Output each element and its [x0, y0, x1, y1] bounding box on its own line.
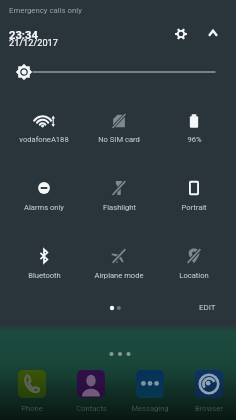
button[interactable]: Portrait — [157, 168, 231, 208]
button[interactable]: EDIT — [192, 300, 222, 315]
staticText: Bluetooth — [28, 271, 61, 280]
button[interactable]: Browser — [180, 370, 236, 414]
button[interactable]: Flashlight — [82, 168, 156, 208]
button[interactable]: Airplane mode — [82, 236, 156, 276]
staticText: Messaging — [131, 404, 169, 413]
staticText: 96% — [187, 135, 202, 144]
button[interactable]: Wi-Fi — [7, 101, 81, 141]
button[interactable]: Location — [157, 236, 231, 276]
staticText: Alarms only — [24, 203, 64, 212]
button[interactable]: Contacts — [62, 370, 120, 414]
button[interactable]: Bluetooth — [7, 236, 81, 276]
staticText: Portrait — [181, 203, 207, 212]
staticText: Flashlight — [103, 203, 136, 212]
button[interactable]: Phone — [3, 370, 61, 414]
button[interactable]: Alarms only — [7, 168, 81, 208]
staticText: Airplane mode — [94, 271, 144, 280]
button[interactable]: No SIM card — [82, 101, 156, 141]
staticText: Contacts — [76, 404, 107, 413]
button[interactable]: Battery — [157, 101, 231, 141]
staticText: 21/12/2017 — [9, 37, 58, 48]
button[interactable]: Messaging — [121, 370, 179, 414]
staticText: 23:34 — [9, 29, 38, 42]
staticText: Emergency calls only — [9, 6, 82, 15]
button[interactable]: Collapse — [199, 19, 227, 47]
staticText: No SIM card — [98, 135, 140, 144]
staticText: EDIT — [199, 303, 216, 312]
staticText: Phone — [21, 404, 43, 413]
button[interactable]: Brightness — [10, 58, 38, 86]
staticText: Browser — [195, 404, 223, 413]
staticText: Location — [179, 271, 209, 280]
button[interactable]: Settings — [167, 20, 195, 48]
staticText: vodafoneA188 — [19, 135, 69, 144]
